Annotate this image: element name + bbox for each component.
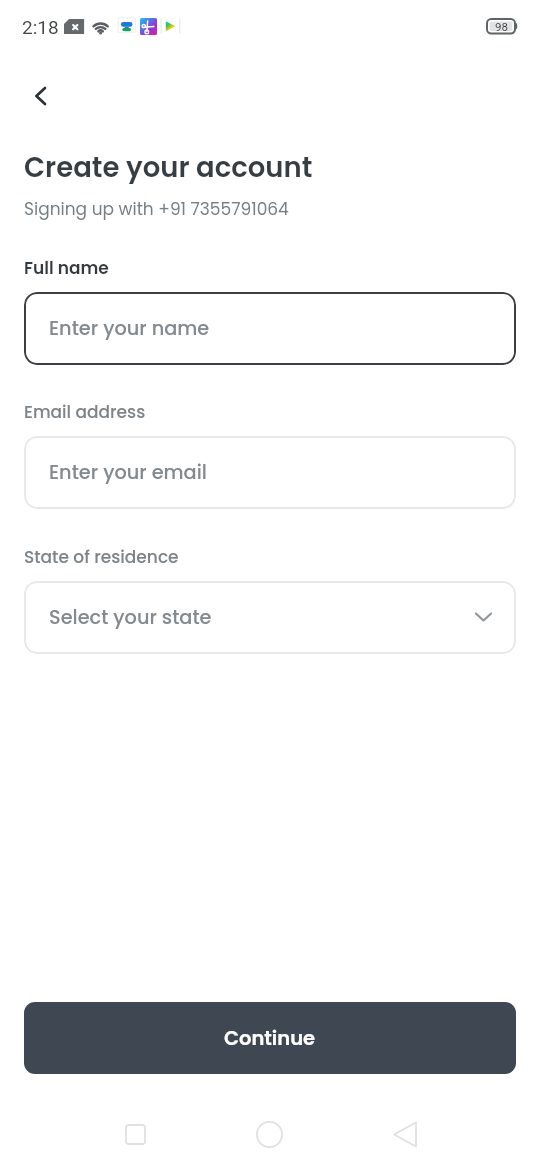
staticText: Email address	[24, 400, 146, 424]
staticText: 2:18	[22, 16, 59, 38]
staticText: State of residence	[24, 545, 179, 569]
button[interactable]: Recent apps	[111, 1110, 159, 1158]
button[interactable]: Home	[245, 1110, 293, 1158]
button[interactable]: Continue	[24, 1002, 516, 1074]
staticText: Enter your email	[49, 459, 207, 486]
staticText: Enter your name	[49, 315, 210, 342]
staticText: Continue	[224, 1025, 316, 1052]
staticText: Full name	[24, 256, 109, 280]
button[interactable]: Select your state	[24, 581, 516, 654]
staticText: 98	[495, 20, 508, 33]
button[interactable]: Back	[381, 1110, 429, 1158]
button[interactable]: Enter your name	[24, 292, 516, 365]
staticText: Select your state	[49, 604, 212, 631]
button[interactable]: Back	[17, 72, 64, 119]
staticText: Create your account	[24, 148, 313, 186]
button[interactable]: Enter your email	[24, 436, 516, 509]
staticText: Signing up with +91 7355791064	[24, 197, 289, 221]
